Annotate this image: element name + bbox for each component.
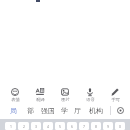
button[interactable]: 部 — [25, 104, 36, 117]
button[interactable]: 强国 — [40, 104, 55, 117]
button[interactable]: Image — [54, 88, 76, 102]
button[interactable]: 学 — [59, 104, 70, 117]
staticText: 3 — [35, 124, 37, 129]
staticText: 1 — [10, 124, 12, 129]
staticText: 厅 — [74, 106, 81, 115]
staticText: 图片 — [61, 97, 70, 102]
staticText: 8 — [95, 124, 97, 129]
button[interactable]: Voice — [79, 88, 101, 102]
staticText: 4 — [47, 124, 49, 129]
button[interactable]: 5 — [55, 122, 65, 130]
staticText: 7 — [83, 124, 85, 129]
staticText: 机构 — [89, 106, 103, 115]
button[interactable]: More candidates — [113, 104, 128, 117]
staticText: 局 — [10, 106, 17, 115]
button[interactable]: 3 — [31, 122, 41, 130]
button[interactable]: 1 — [5, 122, 16, 130]
button[interactable]: 2 — [18, 122, 29, 130]
staticText: 0 — [119, 124, 121, 129]
button[interactable]: 厅 — [72, 104, 83, 117]
button[interactable]: 机构 — [88, 104, 103, 117]
button[interactable]: 7 — [79, 122, 89, 130]
button[interactable]: 6 — [67, 122, 77, 130]
staticText: 翻译 — [36, 97, 45, 102]
button[interactable]: Translate — [29, 88, 51, 102]
button[interactable]: Handwriting — [104, 88, 126, 102]
button[interactable]: 8 — [91, 122, 101, 130]
button[interactable]: 4 — [43, 122, 53, 130]
button[interactable]: 局 — [8, 104, 19, 117]
staticText: 强国 — [41, 106, 55, 115]
staticText: 9 — [107, 124, 109, 129]
button[interactable]: Emoji — [4, 88, 26, 102]
staticText: 5 — [59, 124, 61, 129]
staticText: 部 — [27, 106, 34, 115]
staticText: 学 — [61, 106, 68, 115]
staticText: 2 — [23, 124, 25, 129]
button[interactable]: 0 — [115, 122, 125, 130]
staticText: 表情 — [11, 97, 20, 102]
staticText: 6 — [71, 124, 73, 129]
button[interactable]: 9 — [103, 122, 113, 130]
staticText: 手写 — [111, 97, 120, 102]
staticText: 语音 — [86, 97, 95, 102]
